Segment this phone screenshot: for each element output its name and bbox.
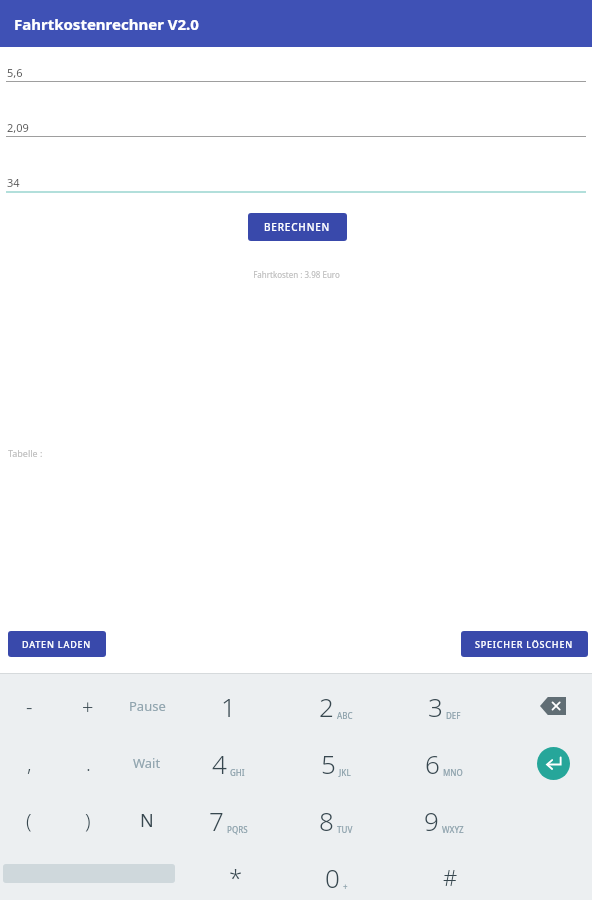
button[interactable]: *	[207, 849, 265, 900]
button[interactable]: 2,09	[0, 117, 592, 137]
staticText: SPEICHER LÖSCHEN	[475, 638, 574, 650]
button[interactable]: Enter	[524, 735, 582, 791]
button[interactable]: Wait	[118, 735, 176, 791]
button[interactable]: 3	[415, 678, 473, 734]
button[interactable]: ,	[0, 735, 58, 791]
button[interactable]: 2	[307, 678, 365, 734]
staticText: DEF	[446, 710, 461, 721]
button[interactable]: 8	[307, 792, 365, 848]
staticText: (	[26, 807, 32, 834]
staticText: *	[229, 861, 243, 894]
staticText: Fahrtkostenrechner V2.0	[14, 14, 199, 34]
staticText: Pause	[129, 697, 166, 715]
button[interactable]: .	[59, 735, 117, 791]
staticText: 5,6	[7, 65, 23, 80]
staticText: 4	[212, 746, 227, 781]
staticText: WXYZ	[442, 824, 464, 835]
staticText: +	[343, 881, 348, 892]
staticText: PQRS	[227, 824, 248, 835]
button[interactable]: 7	[199, 792, 257, 848]
staticText: 34	[7, 175, 20, 190]
button[interactable]: -	[0, 678, 58, 734]
staticText: 6	[425, 746, 440, 781]
staticText: ABC	[337, 710, 353, 721]
staticText: Tabelle :	[8, 447, 43, 459]
button[interactable]: 4	[199, 735, 257, 791]
staticText: 9	[424, 803, 439, 838]
staticText: TUV	[337, 824, 353, 835]
staticText: 7	[209, 803, 224, 838]
staticText: BERECHNEN	[264, 220, 331, 234]
staticText: 3	[428, 689, 443, 724]
staticText: )	[85, 807, 91, 834]
button[interactable]: 5,6	[0, 62, 592, 82]
staticText: 2	[319, 689, 334, 724]
button[interactable]: )	[59, 792, 117, 848]
staticText: N	[140, 808, 154, 833]
staticText: 0	[325, 860, 340, 895]
button[interactable]: 0	[307, 849, 365, 900]
staticText: #	[443, 862, 458, 892]
button[interactable]: +	[59, 678, 117, 734]
staticText: JKL	[339, 767, 351, 778]
button[interactable]: Backspace	[524, 678, 582, 734]
button[interactable]: 1	[199, 678, 257, 734]
staticText: 1	[221, 689, 236, 724]
button[interactable]: 5	[307, 735, 365, 791]
button[interactable]: DATEN LADEN	[8, 631, 106, 657]
button[interactable]: N	[118, 792, 176, 848]
staticText: ,	[27, 750, 32, 777]
button[interactable]: Pause	[118, 678, 176, 734]
staticText: Wait	[133, 754, 161, 772]
button[interactable]: SPEICHER LÖSCHEN	[461, 631, 588, 657]
button[interactable]: #	[421, 849, 479, 900]
staticText: 8	[319, 803, 334, 838]
button[interactable]: 6	[415, 735, 473, 791]
staticText: 5	[321, 746, 336, 781]
button[interactable]: BERECHNEN	[248, 213, 347, 241]
staticText: DATEN LADEN	[22, 638, 92, 650]
button[interactable]: 9	[415, 792, 473, 848]
staticText: GHI	[230, 767, 245, 778]
staticText: Fahrtkosten : 3.98 Euro	[253, 269, 340, 280]
staticText: +	[82, 693, 94, 720]
button[interactable]: (	[0, 792, 58, 848]
staticText: MNO	[443, 767, 463, 778]
staticText: .	[86, 750, 91, 777]
staticText: -	[26, 693, 33, 720]
button[interactable]: 34	[0, 172, 592, 192]
staticText: 2,09	[7, 120, 29, 135]
